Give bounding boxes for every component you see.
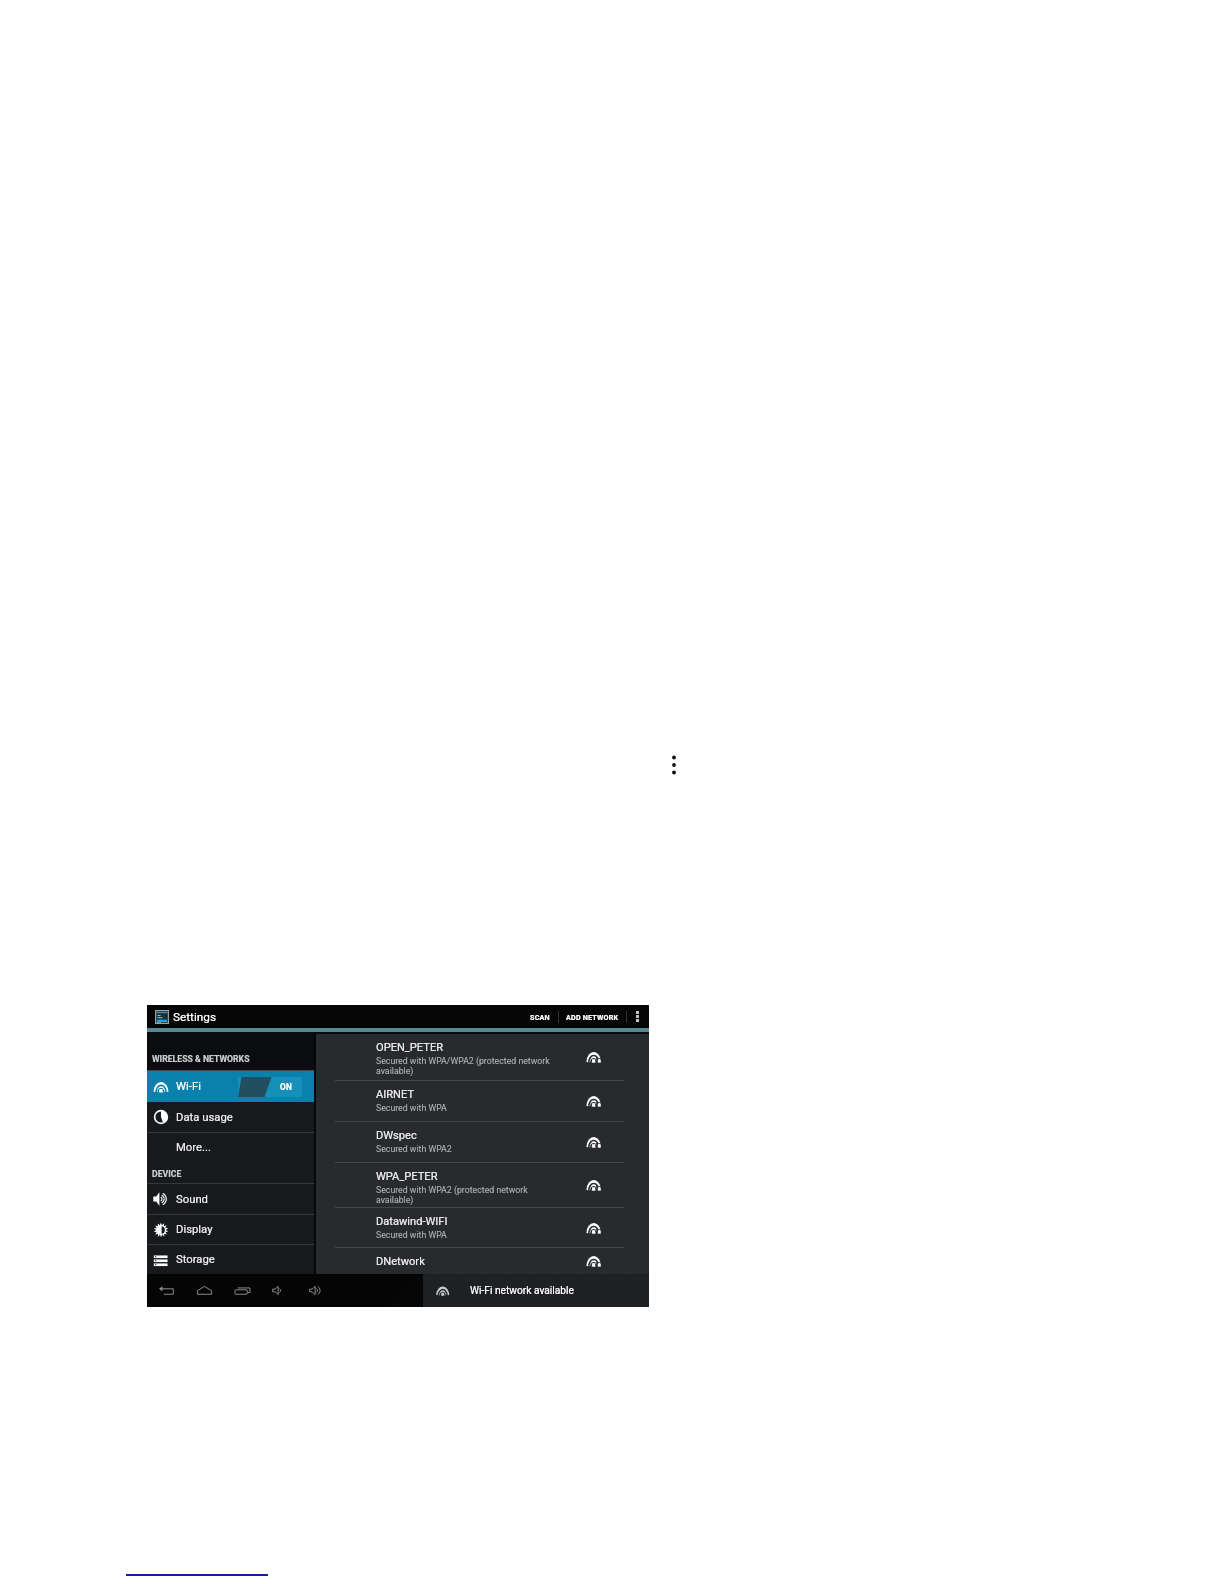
button[interactable]: ADD NETWORK: [559, 1005, 626, 1028]
button[interactable]: More options: [627, 1005, 648, 1028]
staticText: Wi-Fi network available: [470, 1285, 574, 1297]
staticText: Data usage: [176, 1111, 233, 1124]
staticText: ADD NETWORK: [566, 1013, 619, 1021]
staticText: DEVICE: [152, 1169, 182, 1179]
staticText: Display: [176, 1223, 213, 1236]
staticText: Secured with WPA/WPA2 (protected network…: [376, 1056, 554, 1076]
staticText: Secured with WPA2: [376, 1144, 452, 1154]
staticText: Secured with WPA: [376, 1230, 447, 1240]
button[interactable]: Volume up: [305, 1274, 327, 1307]
staticText: Datawind-WIFI: [376, 1215, 448, 1228]
staticText: DWspec: [376, 1129, 417, 1142]
button[interactable]: AIRNET: [316, 1081, 649, 1121]
button[interactable]: DNetwork: [316, 1248, 649, 1274]
button[interactable]: Home: [193, 1274, 215, 1307]
button[interactable]: Wi-Fi network available: [423, 1274, 649, 1307]
staticText: More...: [176, 1141, 211, 1154]
staticText: Secured with WPA: [376, 1103, 447, 1113]
button[interactable]: Data usage: [147, 1102, 314, 1132]
button[interactable]: ON: [238, 1077, 302, 1097]
button[interactable]: Back: [155, 1274, 177, 1307]
staticText: ON: [280, 1082, 293, 1092]
button[interactable]: Wi-Fi: [147, 1071, 314, 1102]
button[interactable]: WPA_PETER: [316, 1163, 649, 1207]
button[interactable]: Recent apps: [231, 1274, 253, 1307]
staticText: SCAN: [530, 1013, 550, 1021]
button[interactable]: OPEN_PETER: [316, 1034, 649, 1080]
button[interactable]: Datawind-WIFI: [316, 1208, 649, 1247]
staticText: WIRELESS & NETWORKS: [152, 1054, 250, 1064]
staticText: Sound: [176, 1193, 208, 1206]
button[interactable]: Display: [147, 1215, 314, 1244]
button[interactable]: More...: [147, 1133, 314, 1162]
staticText: Storage: [176, 1253, 215, 1266]
button[interactable]: DWspec: [316, 1122, 649, 1162]
staticText: DNetwork: [376, 1255, 425, 1268]
button[interactable]: Volume down: [268, 1274, 290, 1307]
button[interactable]: SCAN: [522, 1005, 558, 1028]
button[interactable]: Storage: [147, 1245, 314, 1274]
button[interactable]: Sound: [147, 1184, 314, 1214]
staticText: Wi-Fi: [176, 1080, 201, 1093]
staticText: Settings: [173, 1010, 217, 1024]
staticText: AIRNET: [376, 1088, 415, 1101]
staticText: OPEN_PETER: [376, 1041, 444, 1054]
staticText: WPA_PETER: [376, 1170, 438, 1183]
staticText: Secured with WPA2 (protected network ava…: [376, 1185, 554, 1205]
